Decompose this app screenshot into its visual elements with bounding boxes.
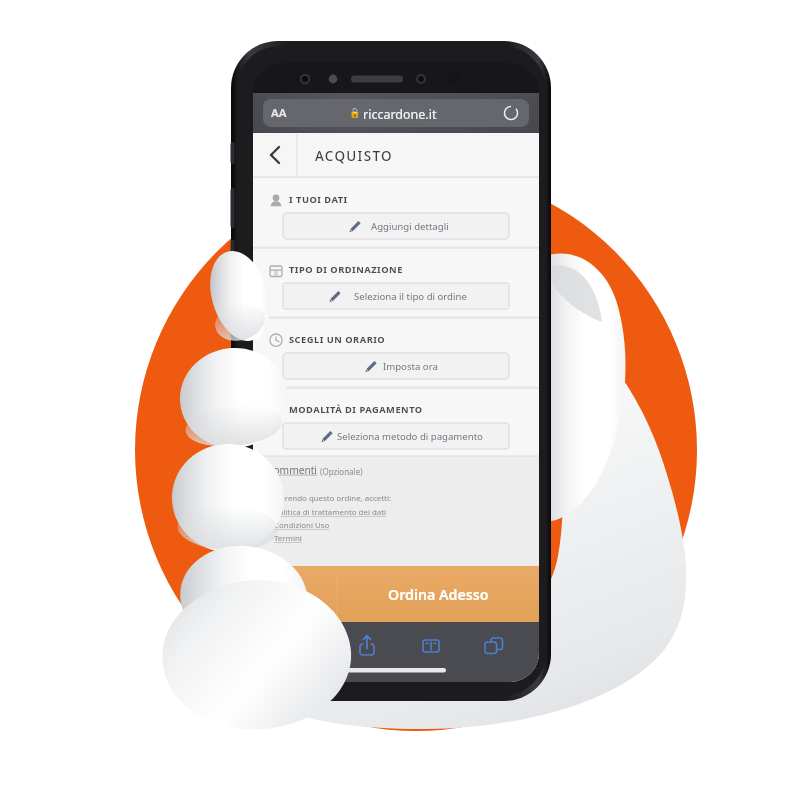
staticText: riccardone.it	[363, 106, 437, 123]
staticText: I TUOI DATI	[289, 193, 348, 206]
button[interactable]: Seleziona metodo di pagamento	[283, 423, 509, 449]
button[interactable]: Share	[347, 627, 387, 665]
staticText: Termini	[274, 533, 302, 544]
button[interactable]: Back	[253, 133, 297, 177]
button[interactable]: Show tabs	[473, 627, 513, 665]
button[interactable]: Condizioni Uso	[274, 520, 330, 531]
button[interactable]: Aggiungi dettagli	[283, 213, 509, 239]
staticText: SCEGLI UN ORARIO	[289, 333, 386, 346]
staticText: TIPO DI ORDINAZIONE	[289, 263, 403, 276]
button[interactable]: Text size options	[263, 99, 321, 127]
staticText: (Opzionale)	[320, 466, 363, 477]
staticText: Ordina Adesso	[388, 585, 489, 604]
staticText: ACQUISTO	[315, 147, 393, 165]
button[interactable]: Seleziona il tipo di ordine	[283, 283, 509, 309]
button[interactable]: Ordina Adesso	[253, 566, 539, 622]
staticText: AA	[271, 105, 287, 121]
button[interactable]: Bookmarks	[411, 627, 451, 665]
button[interactable]: Reload page	[491, 99, 529, 127]
staticText: Inserendo questo ordine, accetti:	[269, 493, 392, 504]
staticText: Condizioni Uso	[274, 520, 330, 531]
staticText: Seleziona il tipo di ordine	[354, 290, 467, 303]
button[interactable]: Imposta ora	[283, 353, 509, 379]
staticText: Imposta ora	[383, 360, 438, 373]
button[interactable]: Termini	[274, 533, 302, 544]
staticText: Politica di trattamento dei dati	[274, 507, 387, 518]
button[interactable]: Forward	[283, 627, 323, 665]
button[interactable]: Commenti	[267, 463, 363, 477]
staticText: Aggiungi dettagli	[371, 220, 449, 233]
staticText: MODALITÀ DI PAGAMENTO	[289, 403, 423, 416]
staticText: 🔒	[349, 107, 361, 118]
staticText: Seleziona metodo di pagamento	[337, 430, 483, 443]
staticText: Commenti	[267, 463, 317, 477]
button[interactable]: Politica di trattamento dei dati	[274, 507, 387, 518]
